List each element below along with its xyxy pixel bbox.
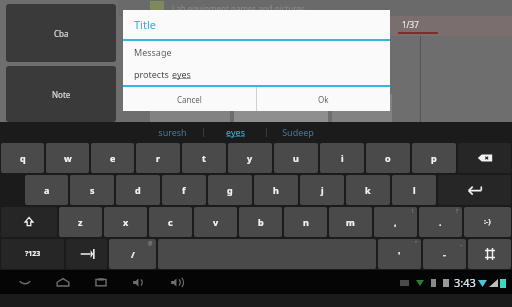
button[interactable]: w — [46, 143, 89, 173]
button[interactable]: a — [25, 175, 68, 205]
button[interactable]: suresh — [141, 122, 203, 142]
button[interactable]: d — [116, 175, 160, 205]
staticText: ?123 — [25, 249, 41, 259]
button[interactable]: Sudeep — [267, 122, 329, 142]
staticText: " — [415, 240, 418, 247]
button[interactable]: ' — [378, 239, 421, 269]
button[interactable]: x — [104, 207, 147, 237]
button[interactable]: o — [366, 143, 410, 173]
staticText: m — [346, 216, 355, 228]
staticText: Cancel — [177, 94, 202, 105]
staticText: eyes — [172, 68, 191, 80]
button[interactable]: Keyboard settings — [468, 239, 511, 269]
staticText: p — [431, 152, 437, 164]
staticText: o — [385, 152, 391, 164]
button[interactable]: , — [374, 207, 417, 237]
staticText: j — [321, 184, 324, 196]
button[interactable]: Enter — [438, 175, 511, 205]
button[interactable]: ?123 — [1, 239, 64, 269]
staticText: Title — [134, 17, 156, 32]
staticText: 1/37 — [402, 19, 419, 30]
button[interactable]: v — [194, 207, 237, 237]
button[interactable]: - — [423, 239, 466, 269]
button[interactable]: e — [91, 143, 134, 173]
staticText: i — [341, 152, 344, 164]
button[interactable]: Cba — [6, 4, 116, 62]
staticText: . — [439, 216, 442, 228]
button[interactable]: . — [419, 207, 462, 237]
button[interactable]: Cancel — [123, 87, 256, 111]
button[interactable]: l — [392, 175, 436, 205]
button[interactable]: Shift — [1, 207, 57, 237]
button[interactable]: t — [182, 143, 226, 173]
staticText: / — [131, 248, 135, 260]
button[interactable]: Volume up — [166, 272, 188, 292]
button[interactable]: y — [228, 143, 272, 173]
staticText: l — [413, 184, 416, 196]
button[interactable]: Tab — [66, 239, 107, 269]
button[interactable]: Note — [6, 66, 116, 122]
staticText: a — [44, 184, 50, 196]
button[interactable]: Volume down — [128, 272, 150, 292]
staticText: g — [227, 184, 233, 196]
staticText: eyes — [226, 126, 245, 138]
staticText: Message — [134, 46, 172, 58]
staticText: protects — [134, 68, 172, 80]
staticText: b — [258, 216, 264, 228]
button[interactable]: g — [208, 175, 252, 205]
staticText: ? — [456, 208, 459, 215]
button[interactable]: h — [254, 175, 298, 205]
staticText: x — [123, 216, 129, 228]
button[interactable]: p — [412, 143, 456, 173]
staticText: e — [110, 152, 116, 164]
staticText: r — [156, 152, 161, 164]
staticText: 3:43 — [454, 275, 476, 290]
staticText: n — [303, 216, 309, 228]
button[interactable]: n — [284, 207, 327, 237]
button[interactable]: c — [149, 207, 192, 237]
staticText: Sudeep — [282, 126, 314, 138]
staticText: u — [293, 152, 299, 164]
button[interactable]: Back — [14, 272, 36, 292]
staticText: t — [202, 152, 206, 164]
staticText: f — [182, 184, 186, 196]
button[interactable]: f — [162, 175, 206, 205]
button[interactable]: Ok — [257, 87, 390, 111]
staticText: v — [213, 216, 219, 228]
button[interactable]: m — [329, 207, 372, 237]
staticText: @ — [148, 240, 153, 247]
button[interactable]: Delete — [458, 143, 511, 173]
button[interactable]: Recent apps — [90, 272, 112, 292]
staticText: w — [64, 152, 72, 164]
staticText: Note — [52, 89, 71, 100]
staticText: suresh — [158, 126, 187, 138]
staticText: h — [273, 184, 279, 196]
button[interactable]: eyes — [204, 122, 266, 142]
staticText: y — [247, 152, 253, 164]
staticText: Cba — [54, 28, 69, 39]
button[interactable]: b — [239, 207, 282, 237]
staticText: k — [365, 184, 371, 196]
staticText: ' — [398, 248, 401, 260]
staticText: Lab equipment names and pictures — [172, 3, 305, 14]
button[interactable]: Home — [52, 272, 74, 292]
staticText: q — [20, 152, 26, 164]
button[interactable]: j — [300, 175, 344, 205]
staticText: - — [443, 248, 446, 260]
staticText: :-) — [484, 217, 491, 227]
staticText: ! — [412, 208, 414, 215]
staticText: c — [168, 216, 173, 228]
button[interactable]: i — [320, 143, 364, 173]
staticText: Ok — [318, 94, 329, 105]
button[interactable]: / — [109, 239, 156, 269]
button[interactable]: k — [346, 175, 390, 205]
button[interactable]: u — [274, 143, 318, 173]
button[interactable]: r — [136, 143, 180, 173]
button[interactable]: z — [59, 207, 102, 237]
button[interactable]: q — [1, 143, 44, 173]
button[interactable]: :-) — [464, 207, 511, 237]
staticText: d — [135, 184, 141, 196]
button[interactable]: s — [70, 175, 114, 205]
